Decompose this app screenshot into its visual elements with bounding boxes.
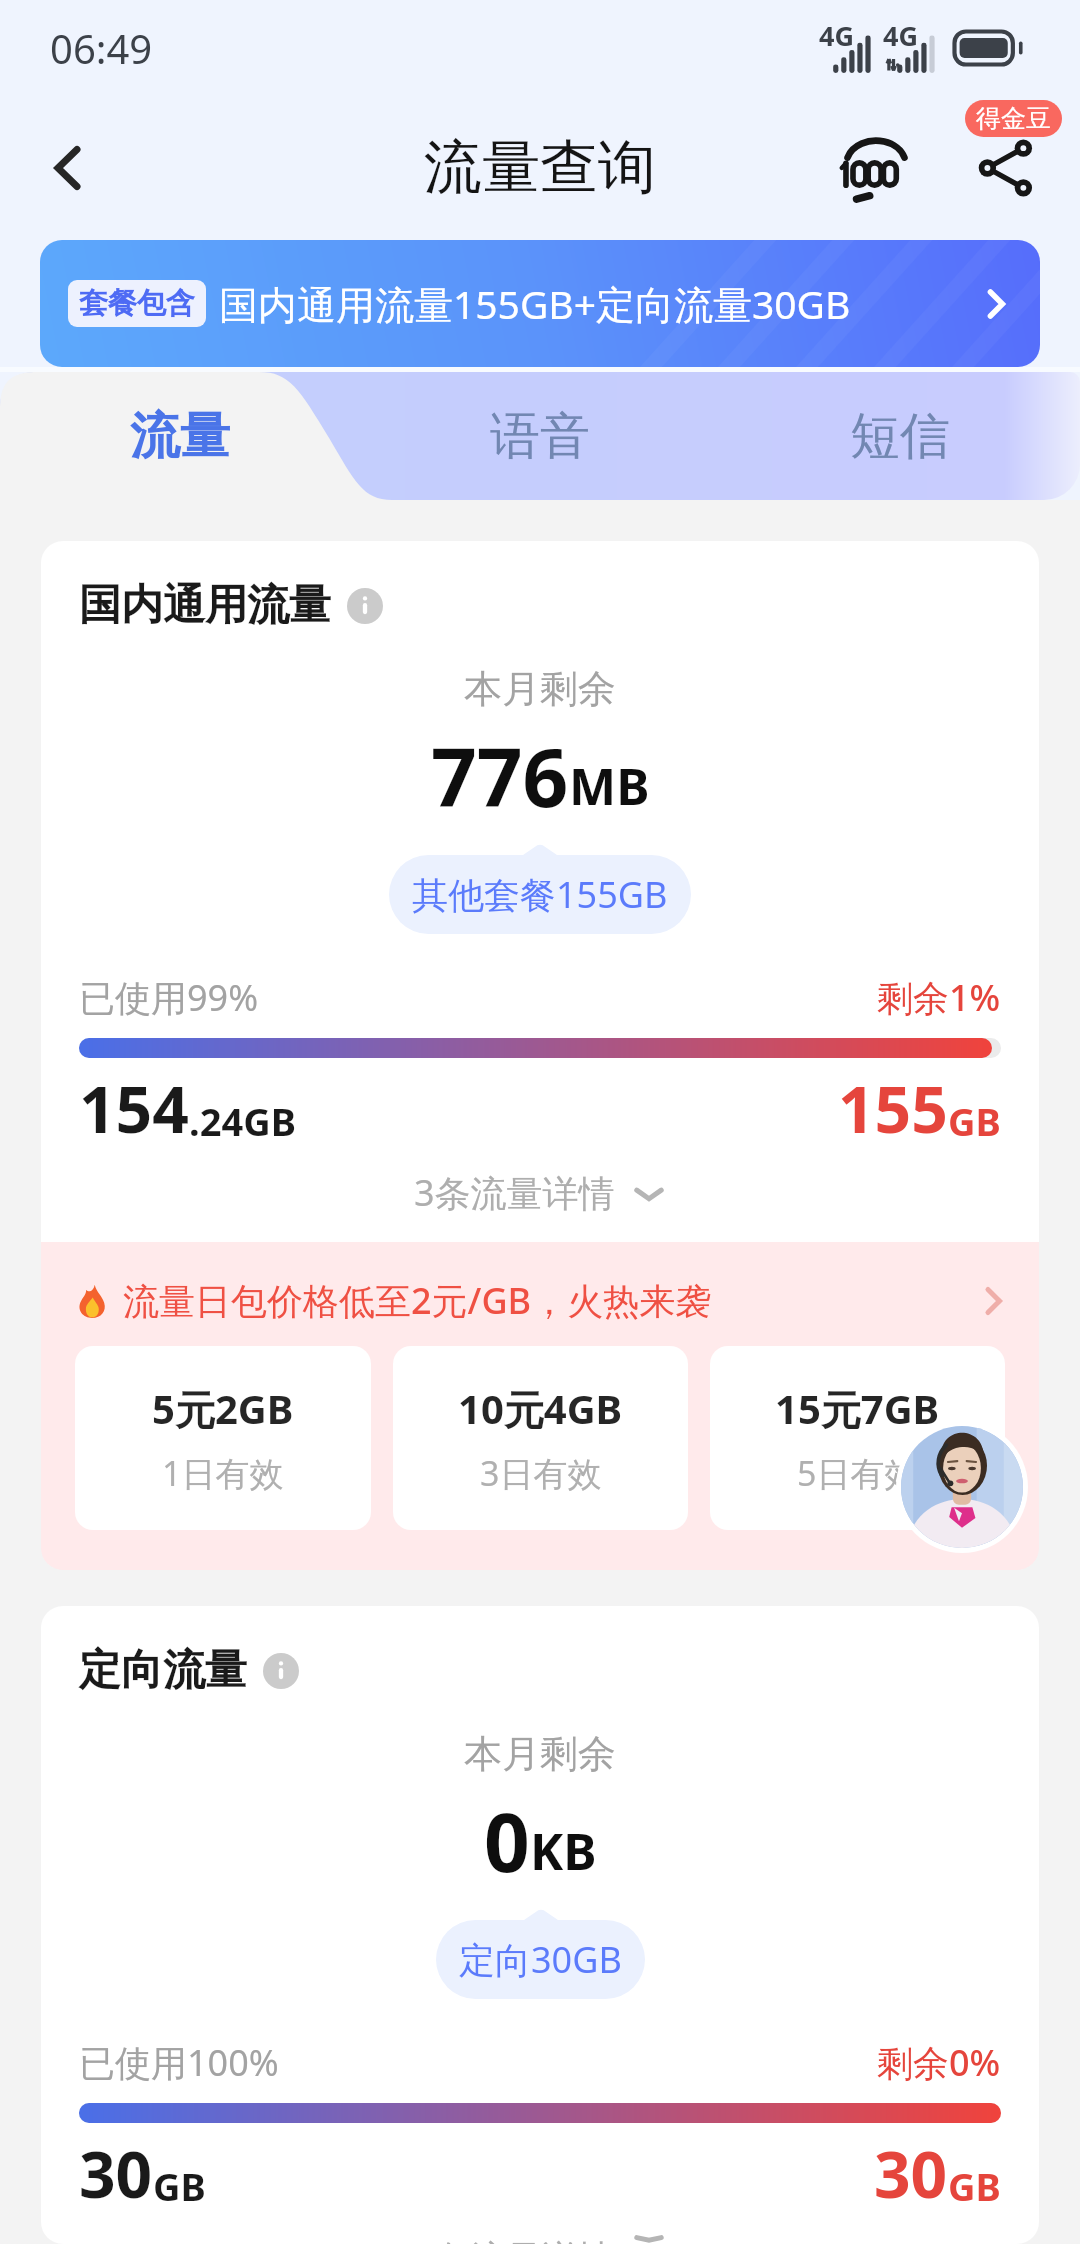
staticText: 本月剩余 [41, 1730, 1039, 1778]
staticText: 4G [883, 17, 918, 54]
button[interactable]: 3条流量详情 [41, 1168, 1039, 1217]
button[interactable]: 其他套餐155GB [389, 855, 691, 934]
staticText: 155 [838, 1065, 948, 1152]
staticText: 30 [874, 2130, 948, 2217]
staticText: MB [569, 752, 650, 820]
button[interactable]: Customer service 10000 [824, 116, 928, 220]
staticText: GB [948, 1095, 1001, 1147]
staticText: 定向流量 [79, 1644, 247, 1697]
staticText: 其他套餐155GB [412, 870, 668, 919]
button[interactable]: 语音 [360, 372, 720, 500]
staticText: GB [153, 2160, 206, 2212]
staticText: 剩余1% [877, 973, 1001, 1022]
button[interactable]: 5元2GB [75, 1346, 371, 1530]
button[interactable]: 3条流量详情 [41, 2233, 1039, 2244]
staticText: 已使用99% [79, 973, 259, 1022]
staticText: .24GB [189, 1095, 296, 1147]
staticText: 3日有效 [480, 1450, 602, 1496]
staticText: 国内通用流量155GB+定向流量30GB [219, 277, 851, 330]
button[interactable]: 定向30GB [436, 1920, 645, 1999]
staticText: 剩余0% [877, 2038, 1001, 2087]
button[interactable]: 15元7GB [710, 1346, 1005, 1530]
staticText: 06:49 [50, 21, 153, 75]
staticText: 流量查询 [424, 131, 656, 204]
staticText: 语音 [490, 405, 590, 468]
staticText: 已使用100% [79, 2038, 279, 2087]
staticText: 10元4GB [458, 1381, 623, 1436]
staticText: 流量日包价格低至2元/GB，火热来袭 [123, 1276, 712, 1325]
staticText: 30 [79, 2130, 153, 2217]
staticText: 5元2GB [152, 1381, 294, 1436]
button[interactable]: 流量 [0, 372, 360, 500]
staticText: 本月剩余 [41, 665, 1039, 713]
staticText: 国内通用流量 [79, 579, 331, 632]
button[interactable]: Customer service [896, 1421, 1028, 1553]
button[interactable]: Share [954, 116, 1058, 220]
staticText: 得金豆 [976, 103, 1051, 134]
button[interactable]: 得金豆 [965, 100, 1062, 137]
staticText: 流量 [130, 405, 230, 468]
staticText: KB [530, 1817, 597, 1885]
staticText: 3条流量详情 [414, 2233, 615, 2244]
button[interactable]: 10元4GB [393, 1346, 688, 1530]
button[interactable]: Back [22, 122, 114, 214]
staticText: 套餐包含 [79, 285, 195, 322]
button[interactable]: 流量日包价格低至2元/GB，火热来袭 [75, 1276, 1011, 1325]
button[interactable]: 短信 [720, 372, 1080, 500]
staticText: 3条流量详情 [414, 1168, 615, 1217]
staticText: 5日有效 [797, 1450, 919, 1496]
staticText: 定向30GB [459, 1935, 622, 1984]
staticText: 4G [819, 17, 854, 54]
staticText: 1日有效 [162, 1450, 284, 1496]
staticText: GB [948, 2160, 1001, 2212]
staticText: 0 [484, 1786, 530, 1895]
staticText: 776 [431, 721, 569, 830]
button[interactable]: 套餐包含 [40, 240, 1040, 367]
staticText: 短信 [850, 405, 950, 468]
staticText: 15元7GB [775, 1381, 940, 1436]
staticText: 154 [79, 1065, 189, 1152]
